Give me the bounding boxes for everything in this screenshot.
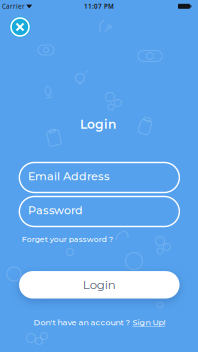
button[interactable]: Password <box>19 196 179 226</box>
staticText: Email Address <box>28 169 110 183</box>
staticText: Password <box>28 203 83 217</box>
button[interactable]: Login <box>19 271 179 299</box>
staticText: Login <box>83 278 116 292</box>
staticText: Login <box>80 117 116 132</box>
staticText: 11:07 PM <box>84 2 114 10</box>
button[interactable]: Don't have an account ? Sign Up! <box>33 318 165 327</box>
staticText: Carrier <box>2 2 25 10</box>
staticText: Forget your password ? <box>22 235 113 244</box>
staticText: Don't have an account ? Sign Up! <box>33 318 165 327</box>
button[interactable]: Forget your password ? <box>22 235 113 244</box>
button[interactable]: Close <box>9 16 30 37</box>
button[interactable]: Email Address <box>19 162 179 192</box>
